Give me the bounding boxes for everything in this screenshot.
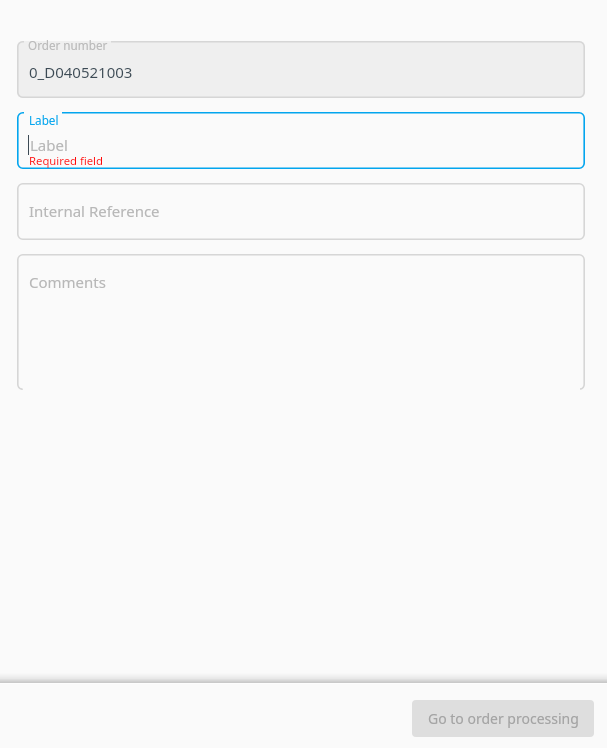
staticText: Required field bbox=[29, 153, 103, 168]
staticText: Order number bbox=[28, 37, 108, 53]
staticText: Go to order processing bbox=[428, 709, 579, 728]
staticText: Internal Reference bbox=[29, 201, 160, 221]
button[interactable]: Label, required field bbox=[17, 112, 585, 169]
button[interactable]: Go to order processing bbox=[412, 700, 594, 737]
staticText: Label bbox=[29, 112, 59, 128]
staticText: Label bbox=[30, 135, 68, 155]
staticText: 0_D040521003 bbox=[29, 62, 133, 82]
button[interactable]: Internal Reference bbox=[17, 183, 585, 240]
staticText: Comments bbox=[29, 272, 106, 292]
button[interactable]: Order number 0_D040521003 bbox=[17, 41, 585, 98]
button[interactable]: Comments bbox=[17, 254, 585, 390]
